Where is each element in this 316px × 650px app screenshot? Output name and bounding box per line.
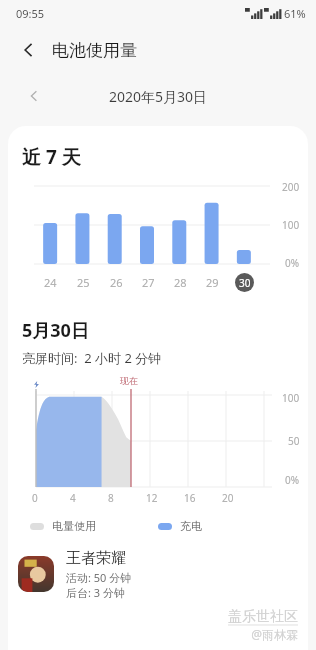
staticText: 61% xyxy=(284,6,306,21)
staticText: 2020年5月30日 xyxy=(109,87,208,106)
button[interactable]: Back xyxy=(14,35,44,65)
staticText: 50 xyxy=(288,434,300,448)
staticText: 12 xyxy=(146,491,158,505)
button[interactable]: 充电 xyxy=(158,519,202,533)
button[interactable]: 30 xyxy=(228,273,260,292)
staticText: 亮屏时间: 2 小时 2 分钟 xyxy=(22,349,162,367)
staticText: 王者荣耀 xyxy=(66,549,126,568)
staticText: @雨林霖 xyxy=(251,626,298,642)
staticText: 29 xyxy=(206,275,219,290)
staticText: 后台: 3 分钟 xyxy=(66,585,125,600)
staticText: 16 xyxy=(184,491,196,505)
staticText: 0% xyxy=(285,256,300,270)
staticText: 100 xyxy=(282,391,300,405)
button[interactable]: 25 xyxy=(67,275,100,290)
staticText: 盖乐世社区 xyxy=(228,608,298,626)
staticText: 8 xyxy=(108,491,114,505)
staticText: 充电 xyxy=(180,519,202,533)
staticText: 09:55 xyxy=(16,6,45,21)
button[interactable]: 电量使用 xyxy=(30,519,96,533)
staticText: 电量使用 xyxy=(52,519,96,533)
staticText: 20 xyxy=(222,491,234,505)
staticText: 28 xyxy=(174,275,187,290)
staticText: 27 xyxy=(142,275,155,290)
staticText: 26 xyxy=(110,275,123,290)
staticText: 现在 xyxy=(120,375,138,386)
staticText: 0 xyxy=(32,491,38,505)
staticText: 4 xyxy=(70,491,76,505)
staticText: 活动: 50 分钟 xyxy=(66,570,132,585)
button[interactable]: Previous day xyxy=(20,82,48,110)
staticText: 200 xyxy=(282,180,300,194)
button[interactable]: 26 xyxy=(100,275,132,290)
staticText: 100 xyxy=(282,218,300,232)
staticText: 5月30日 xyxy=(22,318,89,343)
button[interactable]: 24 xyxy=(34,275,67,290)
staticText: 0% xyxy=(285,473,300,487)
button[interactable]: 27 xyxy=(132,275,164,290)
button[interactable]: 王者荣耀 xyxy=(18,547,298,601)
staticText: 24 xyxy=(44,275,57,290)
staticText: 30 xyxy=(239,276,251,290)
staticText: 25 xyxy=(77,275,90,290)
staticText: 电池使用量 xyxy=(52,40,137,61)
button[interactable]: 29 xyxy=(196,275,228,290)
button[interactable]: 28 xyxy=(164,275,196,290)
staticText: 近 7 天 xyxy=(22,144,81,170)
